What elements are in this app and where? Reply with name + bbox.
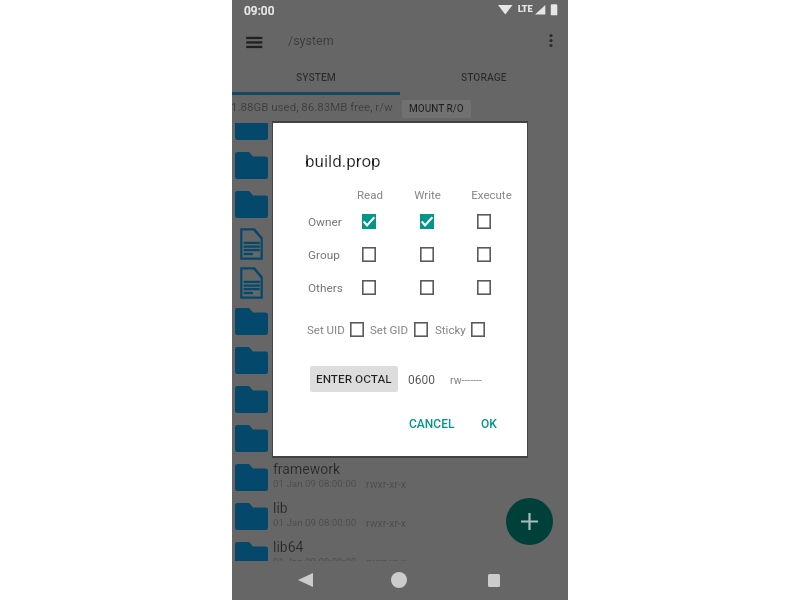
staticText: Set GID: [370, 323, 409, 336]
button[interactable]: build.prop: [232, 224, 568, 263]
staticText: rwxr-xr-x: [366, 244, 407, 256]
button[interactable]: unchecked: [358, 276, 380, 298]
button[interactable]: Back: [281, 560, 329, 600]
button[interactable]: unchecked: [346, 318, 368, 340]
button[interactable]: media: [232, 380, 568, 419]
staticText: rwxr-xr-x: [366, 517, 407, 529]
staticText: rwxr-xr-x: [366, 283, 407, 295]
staticText: CANCEL: [409, 417, 455, 431]
button[interactable]: checked: [358, 210, 380, 232]
staticText: Others: [308, 281, 343, 295]
staticText: rwxr-xr-x: [366, 322, 407, 334]
staticText: rw-------: [450, 374, 482, 386]
button[interactable]: priv-app: [232, 419, 568, 458]
button[interactable]: Open navigation drawer: [236, 27, 268, 59]
staticText: lib64: [273, 539, 304, 555]
button[interactable]: fonts: [232, 341, 568, 380]
button[interactable]: unchecked: [416, 276, 438, 298]
button[interactable]: Home: [375, 560, 423, 600]
staticText: 01 Jan 09 08:00:00: [273, 556, 357, 561]
staticText: framework: [273, 461, 340, 477]
staticText: Owner: [308, 215, 342, 229]
staticText: OK: [481, 417, 497, 431]
button[interactable]: app: [232, 123, 568, 146]
staticText: 0600: [408, 373, 435, 387]
staticText: MOUNT R/O: [409, 103, 464, 115]
button[interactable]: unchecked: [467, 318, 489, 340]
staticText: 01 Jan 09 08:00:00: [273, 322, 357, 333]
staticText: Read: [357, 188, 383, 201]
button[interactable]: unchecked: [358, 243, 380, 265]
staticText: ENTER OCTAL: [316, 372, 392, 386]
button[interactable]: Recent apps: [470, 560, 518, 600]
staticText: Write: [414, 188, 441, 201]
staticText: /system: [288, 33, 334, 48]
button[interactable]: lib64: [232, 536, 568, 561]
staticText: 01 Jan 09 08:00:00: [273, 478, 357, 489]
button[interactable]: checked: [416, 210, 438, 232]
button[interactable]: unchecked: [473, 243, 495, 265]
staticText: rwxr-xr-x: [366, 478, 407, 490]
staticText: build.prop: [305, 151, 381, 171]
staticText: 01 Jan 09 08:00:00: [273, 244, 357, 255]
button[interactable]: fake-libs: [232, 302, 568, 341]
staticText: Set UID: [307, 323, 345, 336]
button[interactable]: STORAGE: [400, 62, 568, 95]
button[interactable]: Add: [506, 498, 553, 545]
button[interactable]: unchecked: [473, 276, 495, 298]
button[interactable]: lib: [232, 497, 568, 536]
staticText: 1.88GB used, 86.83MB free, r/w: [231, 100, 393, 113]
staticText: rwxr-xr-x: [366, 166, 407, 178]
button[interactable]: bin: [232, 146, 568, 185]
button[interactable]: unchecked: [416, 243, 438, 265]
button[interactable]: etc: [232, 185, 568, 224]
staticText: LTE: [518, 4, 533, 15]
button[interactable]: CANCEL: [403, 410, 461, 438]
staticText: media: [273, 383, 312, 399]
staticText: Sticky: [435, 323, 466, 336]
button[interactable]: SYSTEM: [232, 62, 400, 95]
button[interactable]: ENTER OCTAL: [310, 366, 398, 392]
staticText: rwxr-xr-x: [366, 205, 407, 217]
staticText: Group: [308, 248, 340, 262]
staticText: 01 Jan 09 08:00:00: [273, 361, 357, 372]
button[interactable]: default.prop: [232, 263, 568, 302]
button[interactable]: MOUNT R/O: [402, 100, 471, 118]
staticText: rwxr-xr-x: [366, 361, 407, 373]
button[interactable]: OK: [475, 410, 503, 438]
staticText: 09:00: [244, 4, 275, 18]
staticText: 01 Jan 09 08:00:00: [273, 283, 357, 294]
button[interactable]: unchecked: [410, 318, 432, 340]
button[interactable]: More options: [535, 27, 567, 59]
staticText: Execute: [471, 188, 512, 201]
staticText: STORAGE: [461, 71, 507, 83]
staticText: 01 Jan 09 08:00:00: [273, 166, 357, 177]
button[interactable]: framework: [232, 458, 568, 497]
staticText: 01 Jan 09 08:00:00: [273, 517, 357, 528]
staticText: rwxr-xr-x: [366, 556, 407, 561]
staticText: SYSTEM: [296, 71, 336, 83]
staticText: lib: [273, 500, 288, 516]
button[interactable]: unchecked: [473, 210, 495, 232]
